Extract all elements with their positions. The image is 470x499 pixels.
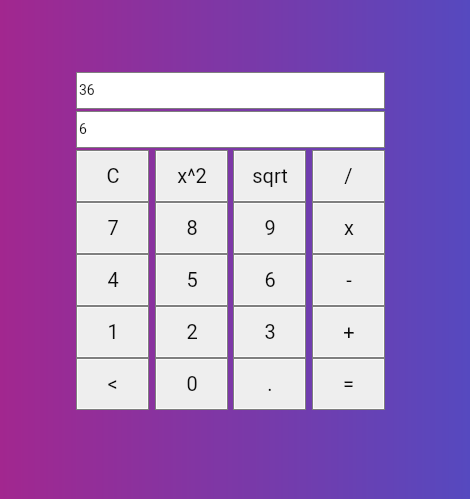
staticText: sqrt [252,164,288,187]
button[interactable]: 2 [157,308,226,356]
staticText: 0 [186,372,198,395]
button[interactable]: 4 [78,256,147,304]
staticText: + [343,320,355,343]
staticText: 6 [79,121,87,137]
button[interactable]: = [314,360,383,408]
staticText: x [344,216,354,239]
staticText: 36 [79,82,95,98]
button[interactable]: 0 [157,360,226,408]
button[interactable]: 6 [77,112,384,147]
staticText: 5 [186,268,198,291]
staticText: 1 [107,320,119,343]
button[interactable]: / [314,152,383,200]
staticText: 8 [186,216,198,239]
button[interactable]: 8 [157,204,226,252]
button[interactable]: 1 [78,308,147,356]
button[interactable]: < [78,360,147,408]
button[interactable]: sqrt [235,152,304,200]
button[interactable]: - [314,256,383,304]
button[interactable]: C [78,152,147,200]
staticText: . [267,372,273,395]
button[interactable]: 3 [235,308,304,356]
staticText: 2 [186,320,198,343]
staticText: < [107,372,118,395]
staticText: C [106,164,120,187]
button[interactable]: + [314,308,383,356]
button[interactable]: x^2 [157,152,226,200]
button[interactable]: 5 [157,256,226,304]
staticText: 6 [264,268,276,291]
staticText: - [346,268,352,291]
button[interactable]: 9 [235,204,304,252]
button[interactable]: x [314,204,383,252]
staticText: / [344,164,353,187]
staticText: 3 [264,320,276,343]
staticText: x^2 [177,164,207,187]
staticText: 4 [107,268,119,291]
button[interactable]: 36 [77,73,384,108]
button[interactable]: 7 [78,204,147,252]
button[interactable]: . [235,360,304,408]
staticText: 9 [264,216,276,239]
staticText: = [343,372,354,395]
staticText: 7 [107,216,119,239]
button[interactable]: 6 [235,256,304,304]
